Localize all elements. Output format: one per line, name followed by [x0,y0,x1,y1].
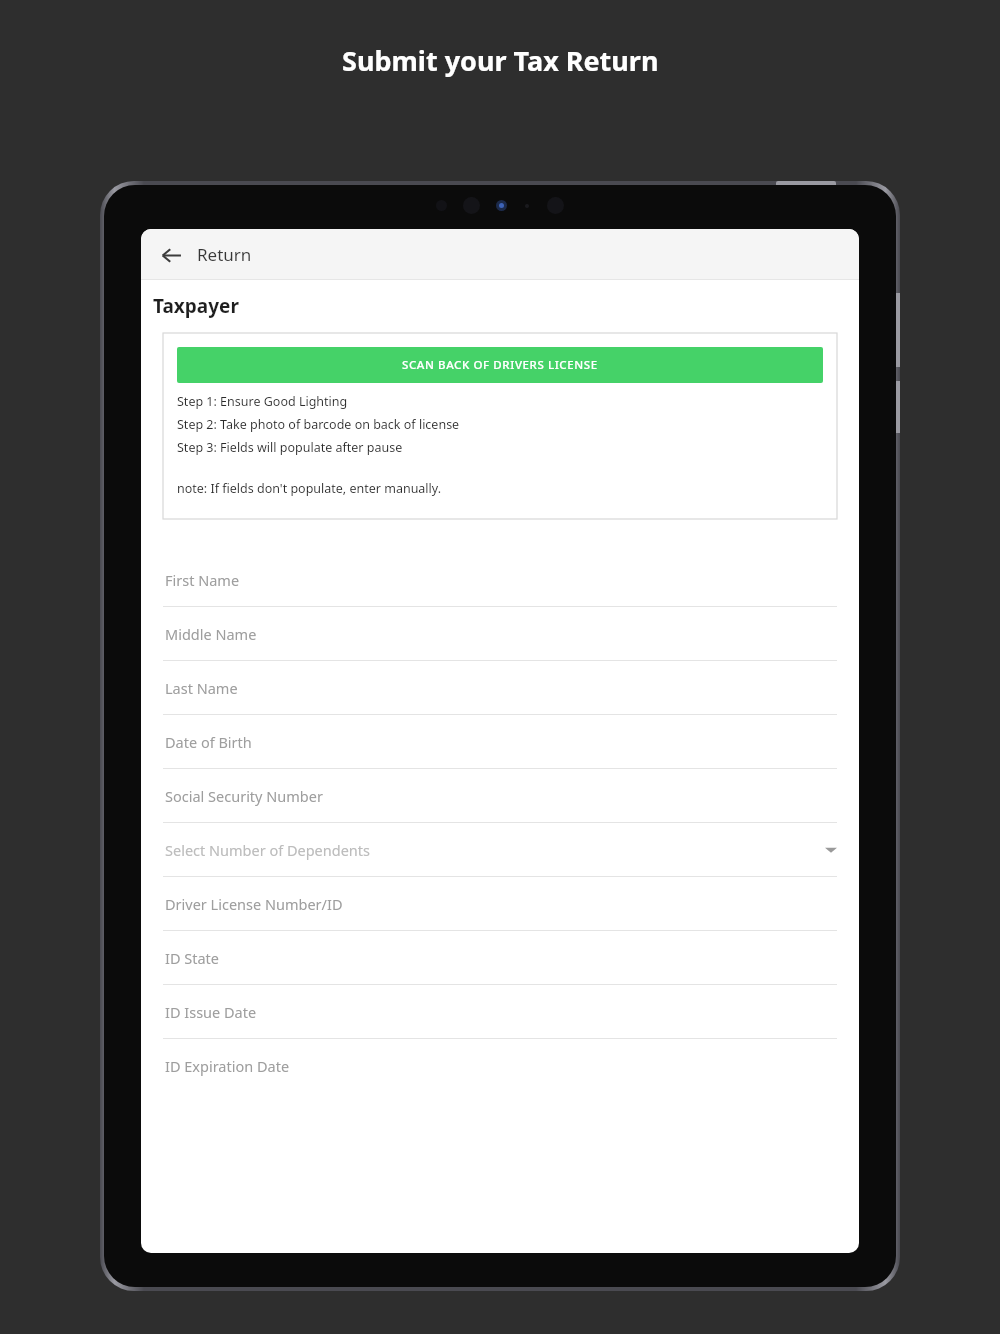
staticText: Return [197,243,252,266]
button[interactable]: Last Name [163,661,837,715]
staticText: Taxpayer [153,293,239,319]
staticText: Submit your Tax Return [342,42,659,79]
staticText: ID Issue Date [165,1002,257,1022]
staticText: Step 1: Ensure Good Lighting [177,393,348,410]
staticText: ID State [165,948,220,968]
staticText: SCAN BACK OF DRIVERS LICENSE [402,357,598,373]
staticText: First Name [165,570,240,590]
button[interactable]: First Name [163,553,837,607]
staticText: Step 2: Take photo of barcode on back of… [177,416,460,433]
staticText: ID Expiration Date [165,1056,290,1076]
staticText: Middle Name [165,624,257,644]
button[interactable]: Middle Name [163,607,837,661]
button[interactable]: ID State [163,931,837,985]
button[interactable]: Social Security Number [163,769,837,823]
button[interactable]: ID Issue Date [163,985,837,1039]
button[interactable]: Back [153,237,189,273]
button[interactable]: Select Number of Dependents [163,823,837,877]
button[interactable]: SCAN BACK OF DRIVERS LICENSE [177,347,823,383]
button[interactable]: Driver License Number/ID [163,877,837,931]
staticText: note: If fields don't populate, enter ma… [177,480,442,497]
staticText: Date of Birth [165,732,252,752]
button[interactable]: ID Expiration Date [163,1039,837,1093]
staticText: Last Name [165,678,238,698]
staticText: Step 3: Fields will populate after pause [177,439,403,456]
staticText: Driver License Number/ID [165,894,343,914]
staticText: Social Security Number [165,786,323,806]
button[interactable]: Date of Birth [163,715,837,769]
staticText: Select Number of Dependents [165,840,370,860]
